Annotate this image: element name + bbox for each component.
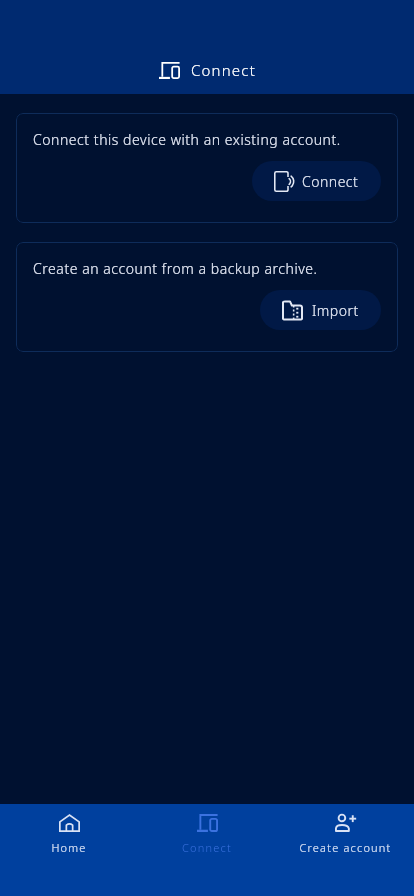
button[interactable]: Connect bbox=[138, 804, 276, 855]
button[interactable]: Import bbox=[260, 290, 381, 330]
staticText: Create an account from a backup archive. bbox=[33, 259, 318, 278]
staticText: Create account bbox=[299, 840, 392, 855]
staticText: Import bbox=[312, 301, 359, 320]
button[interactable]: Create account bbox=[276, 804, 414, 855]
staticText: Connect bbox=[191, 60, 256, 80]
button[interactable]: Connect bbox=[252, 161, 381, 201]
staticText: Connect this device with an existing acc… bbox=[33, 130, 341, 149]
button[interactable]: Create an account from a backup archive. bbox=[16, 242, 398, 352]
button[interactable]: Connect this device with an existing acc… bbox=[16, 113, 398, 223]
staticText: Connect bbox=[302, 172, 359, 191]
staticText: Home bbox=[51, 840, 87, 855]
button[interactable]: Home bbox=[0, 804, 138, 855]
staticText: Connect bbox=[182, 840, 232, 855]
